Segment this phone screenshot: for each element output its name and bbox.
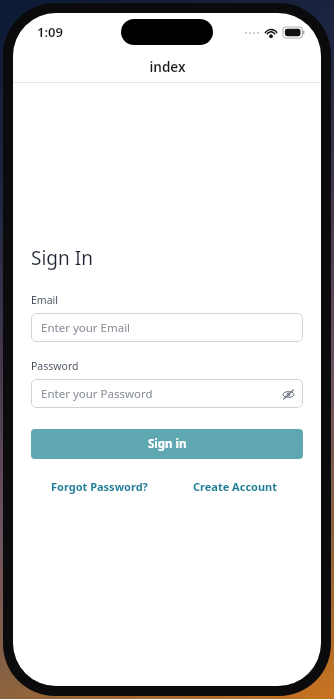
button[interactable]: Enter your Email	[31, 313, 303, 342]
staticText: Password	[31, 359, 79, 373]
staticText: Forgot Password?	[51, 479, 148, 494]
button[interactable]: Show password	[280, 386, 296, 402]
staticText: Sign In	[31, 245, 93, 271]
button[interactable]: Create Account	[167, 479, 303, 494]
staticText: Enter your Password	[41, 386, 153, 402]
staticText: index	[149, 58, 186, 76]
staticText: Email	[31, 293, 58, 307]
button[interactable]: Enter your Password	[31, 379, 303, 408]
button[interactable]: Sign in	[31, 429, 303, 459]
staticText: Create Account	[193, 479, 278, 494]
staticText: Enter your Email	[41, 320, 131, 336]
staticText: 1:09	[37, 23, 63, 41]
staticText: Sign in	[148, 436, 187, 452]
button[interactable]: Forgot Password?	[31, 479, 167, 494]
